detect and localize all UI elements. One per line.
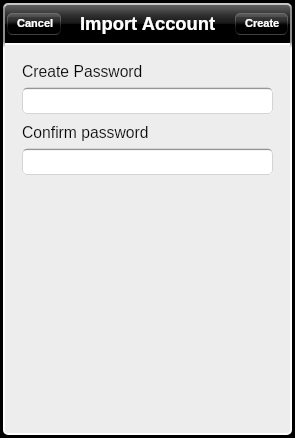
staticText: Create — [245, 17, 280, 29]
button[interactable]: Cancel — [7, 13, 61, 35]
button[interactable] — [22, 88, 273, 114]
button[interactable] — [22, 149, 273, 175]
button[interactable]: Create — [235, 13, 288, 35]
staticText: Confirm password — [22, 124, 149, 142]
staticText: Import Account — [80, 13, 216, 34]
staticText: Create Password — [22, 63, 143, 81]
staticText: Cancel — [17, 17, 54, 29]
